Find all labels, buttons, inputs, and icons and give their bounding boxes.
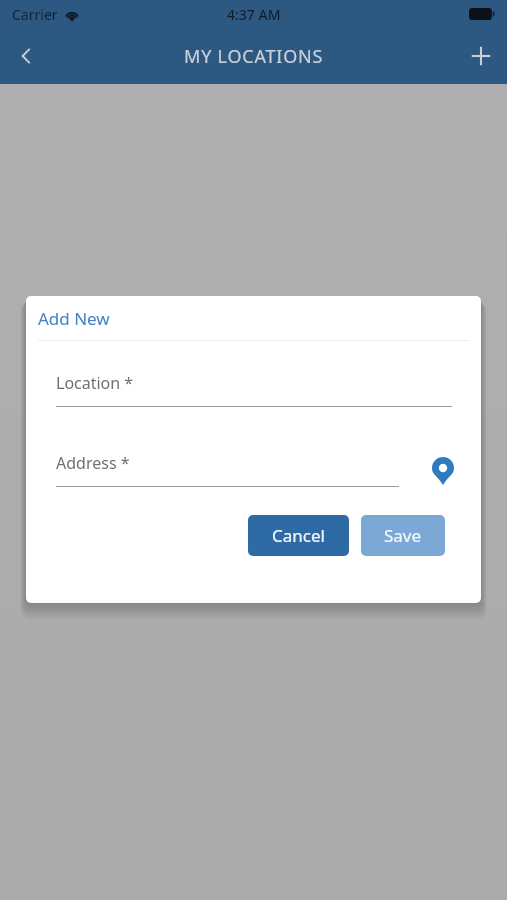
staticText: Save	[384, 524, 422, 547]
button[interactable]: Address *	[56, 452, 399, 487]
staticText: Cancel	[272, 524, 325, 547]
staticText: Location *	[56, 372, 134, 394]
button[interactable]: Save	[361, 515, 445, 556]
staticText: Add New	[38, 307, 110, 330]
button[interactable]: Cancel	[248, 515, 349, 556]
staticText: Carrier	[12, 5, 58, 24]
button[interactable]: Pick location on map	[423, 451, 463, 491]
button[interactable]: Back	[0, 30, 52, 82]
staticText: 4:37 AM	[227, 5, 281, 24]
staticText: Address *	[56, 452, 130, 474]
staticText: MY LOCATIONS	[184, 44, 324, 69]
button[interactable]: Location *	[56, 372, 452, 407]
button[interactable]: Add location	[455, 30, 507, 82]
